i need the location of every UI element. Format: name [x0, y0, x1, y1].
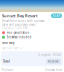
staticText: Contact host [45, 68, 62, 72]
staticText: Breakfast included [6, 35, 31, 39]
staticText: Reserve [48, 60, 59, 63]
button[interactable]: Breakfast included [2, 35, 62, 39]
staticText: Oct 14 – Oct 17 [2, 47, 23, 50]
staticText: 3 nights · $744 [38, 53, 61, 57]
staticText: Beachfront suites with a private [2, 19, 45, 23]
staticText: Free cancellation [6, 31, 29, 34]
staticText: Policies [2, 68, 13, 72]
button[interactable]: $248 [51, 13, 62, 18]
staticText: $248 [52, 14, 60, 17]
button[interactable]: Reserve [46, 59, 61, 64]
staticText: Check-in 3:00 PM [2, 26, 27, 30]
staticText: Sunset Bay Resort [2, 13, 38, 18]
staticText: Your stay [2, 41, 14, 44]
staticText: Total [3, 60, 10, 63]
staticText: lanai and panoramic views. [2, 23, 36, 26]
button[interactable]: Free cancellation [2, 31, 62, 34]
